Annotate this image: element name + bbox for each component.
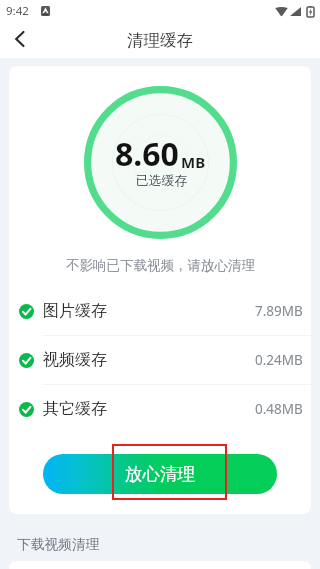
button[interactable]: 放心清理 (43, 454, 277, 494)
staticText: 7.89MB (255, 302, 303, 320)
staticText: 9:42 (6, 3, 29, 19)
button[interactable]: 视频缓存 (9, 336, 311, 385)
staticText: 0.48MB (255, 400, 303, 418)
button[interactable]: 图片缓存 (9, 287, 311, 336)
button[interactable]: 下载视频清理 (0, 536, 320, 553)
staticText: 其它缓存 (43, 399, 107, 419)
staticText: MB (181, 152, 206, 172)
staticText: 8.60 (115, 132, 179, 176)
staticText: 清理缓存 (127, 30, 193, 51)
staticText: 图片缓存 (43, 301, 107, 321)
staticText: 视频缓存 (43, 350, 107, 370)
staticText: 不影响已下载视频，请放心清理 (66, 257, 255, 274)
staticText: 0.24MB (255, 351, 303, 369)
button[interactable]: 其它缓存 (9, 385, 311, 434)
staticText: 已选缓存 (136, 173, 188, 189)
staticText: 放心清理 (125, 463, 195, 485)
button[interactable]: Back (0, 22, 36, 58)
